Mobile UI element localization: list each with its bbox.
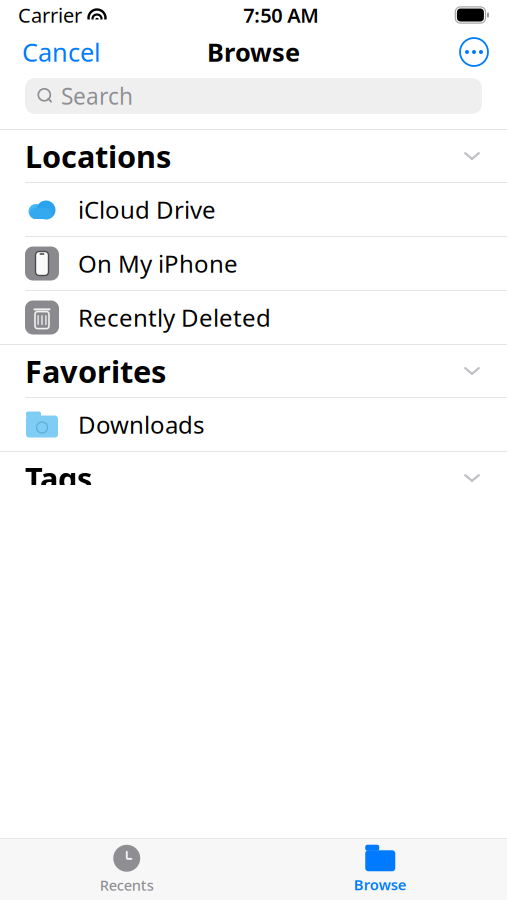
button[interactable]: Favorites bbox=[0, 345, 507, 397]
staticText: iCloud Drive bbox=[78, 194, 216, 225]
button[interactable]: Recently Deleted bbox=[0, 291, 507, 344]
staticText: 7:50 AM bbox=[243, 2, 319, 28]
button[interactable]: On My iPhone bbox=[0, 237, 507, 290]
button[interactable]: Locations bbox=[0, 130, 507, 182]
staticText: Downloads bbox=[78, 409, 204, 440]
staticText: Recently Deleted bbox=[78, 302, 271, 333]
staticText: Browse bbox=[354, 875, 407, 894]
button[interactable]: Browse bbox=[253, 839, 507, 900]
staticText: Browse bbox=[207, 35, 300, 69]
button[interactable]: More bbox=[441, 30, 507, 74]
staticText: Recents bbox=[100, 875, 154, 895]
staticText: On My iPhone bbox=[78, 248, 238, 279]
button[interactable]: Search bbox=[25, 78, 482, 114]
staticText: Carrier bbox=[18, 2, 82, 28]
button[interactable]: Recents bbox=[0, 839, 253, 900]
staticText: Favorites bbox=[25, 351, 166, 391]
button[interactable]: Cancel bbox=[0, 30, 123, 74]
staticText: Tags bbox=[25, 458, 92, 498]
staticText: Cancel bbox=[22, 35, 101, 69]
button[interactable]: Downloads bbox=[0, 398, 507, 451]
staticText: Search bbox=[61, 81, 133, 111]
button[interactable]: iCloud Drive bbox=[0, 183, 507, 236]
staticText: Locations bbox=[25, 136, 171, 176]
button[interactable]: Tags bbox=[0, 452, 507, 504]
